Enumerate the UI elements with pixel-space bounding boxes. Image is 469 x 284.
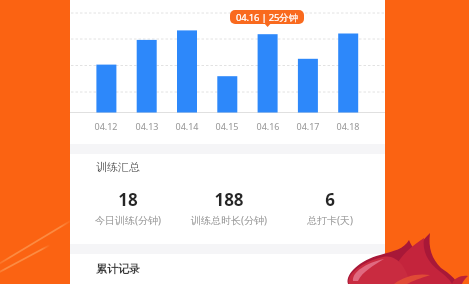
button[interactable]: 188 [179, 188, 279, 225]
button[interactable]: 04.16, 25 minutes [230, 10, 304, 24]
staticText: 04.18 [335, 120, 361, 132]
button[interactable]: 04.15 [214, 120, 240, 132]
staticText: 训练汇总 [96, 160, 140, 174]
button[interactable]: 18 [78, 188, 178, 225]
staticText: 04.13 [134, 120, 160, 132]
staticText: 6 [280, 188, 380, 211]
button[interactable]: 04.12 [93, 120, 119, 132]
staticText: 04.12 [93, 120, 119, 132]
staticText: 04.16 | 25分钟 [236, 11, 298, 24]
button[interactable]: 04.18 [335, 120, 361, 132]
staticText: 04.15 [214, 120, 240, 132]
staticText: 04.17 [295, 120, 321, 132]
button[interactable]: 训练汇总 [70, 154, 385, 244]
staticText: 总打卡(天) [280, 213, 380, 227]
staticText: 04.14 [174, 120, 200, 132]
button[interactable]: 04.17 [295, 120, 321, 132]
button[interactable]: 04.13 [134, 120, 160, 132]
staticText: 188 [179, 188, 279, 211]
button[interactable]: 6 [280, 188, 380, 225]
button[interactable]: 04.14 [174, 120, 200, 132]
staticText: 累计记录 [96, 262, 140, 276]
button[interactable]: 04.16 [255, 120, 281, 132]
staticText: 18 [78, 188, 178, 211]
staticText: 今日训练(分钟) [78, 213, 178, 227]
staticText: 04.16 [255, 120, 281, 132]
staticText: 训练总时长(分钟) [179, 213, 279, 227]
button[interactable]: 累计记录 [70, 254, 385, 284]
